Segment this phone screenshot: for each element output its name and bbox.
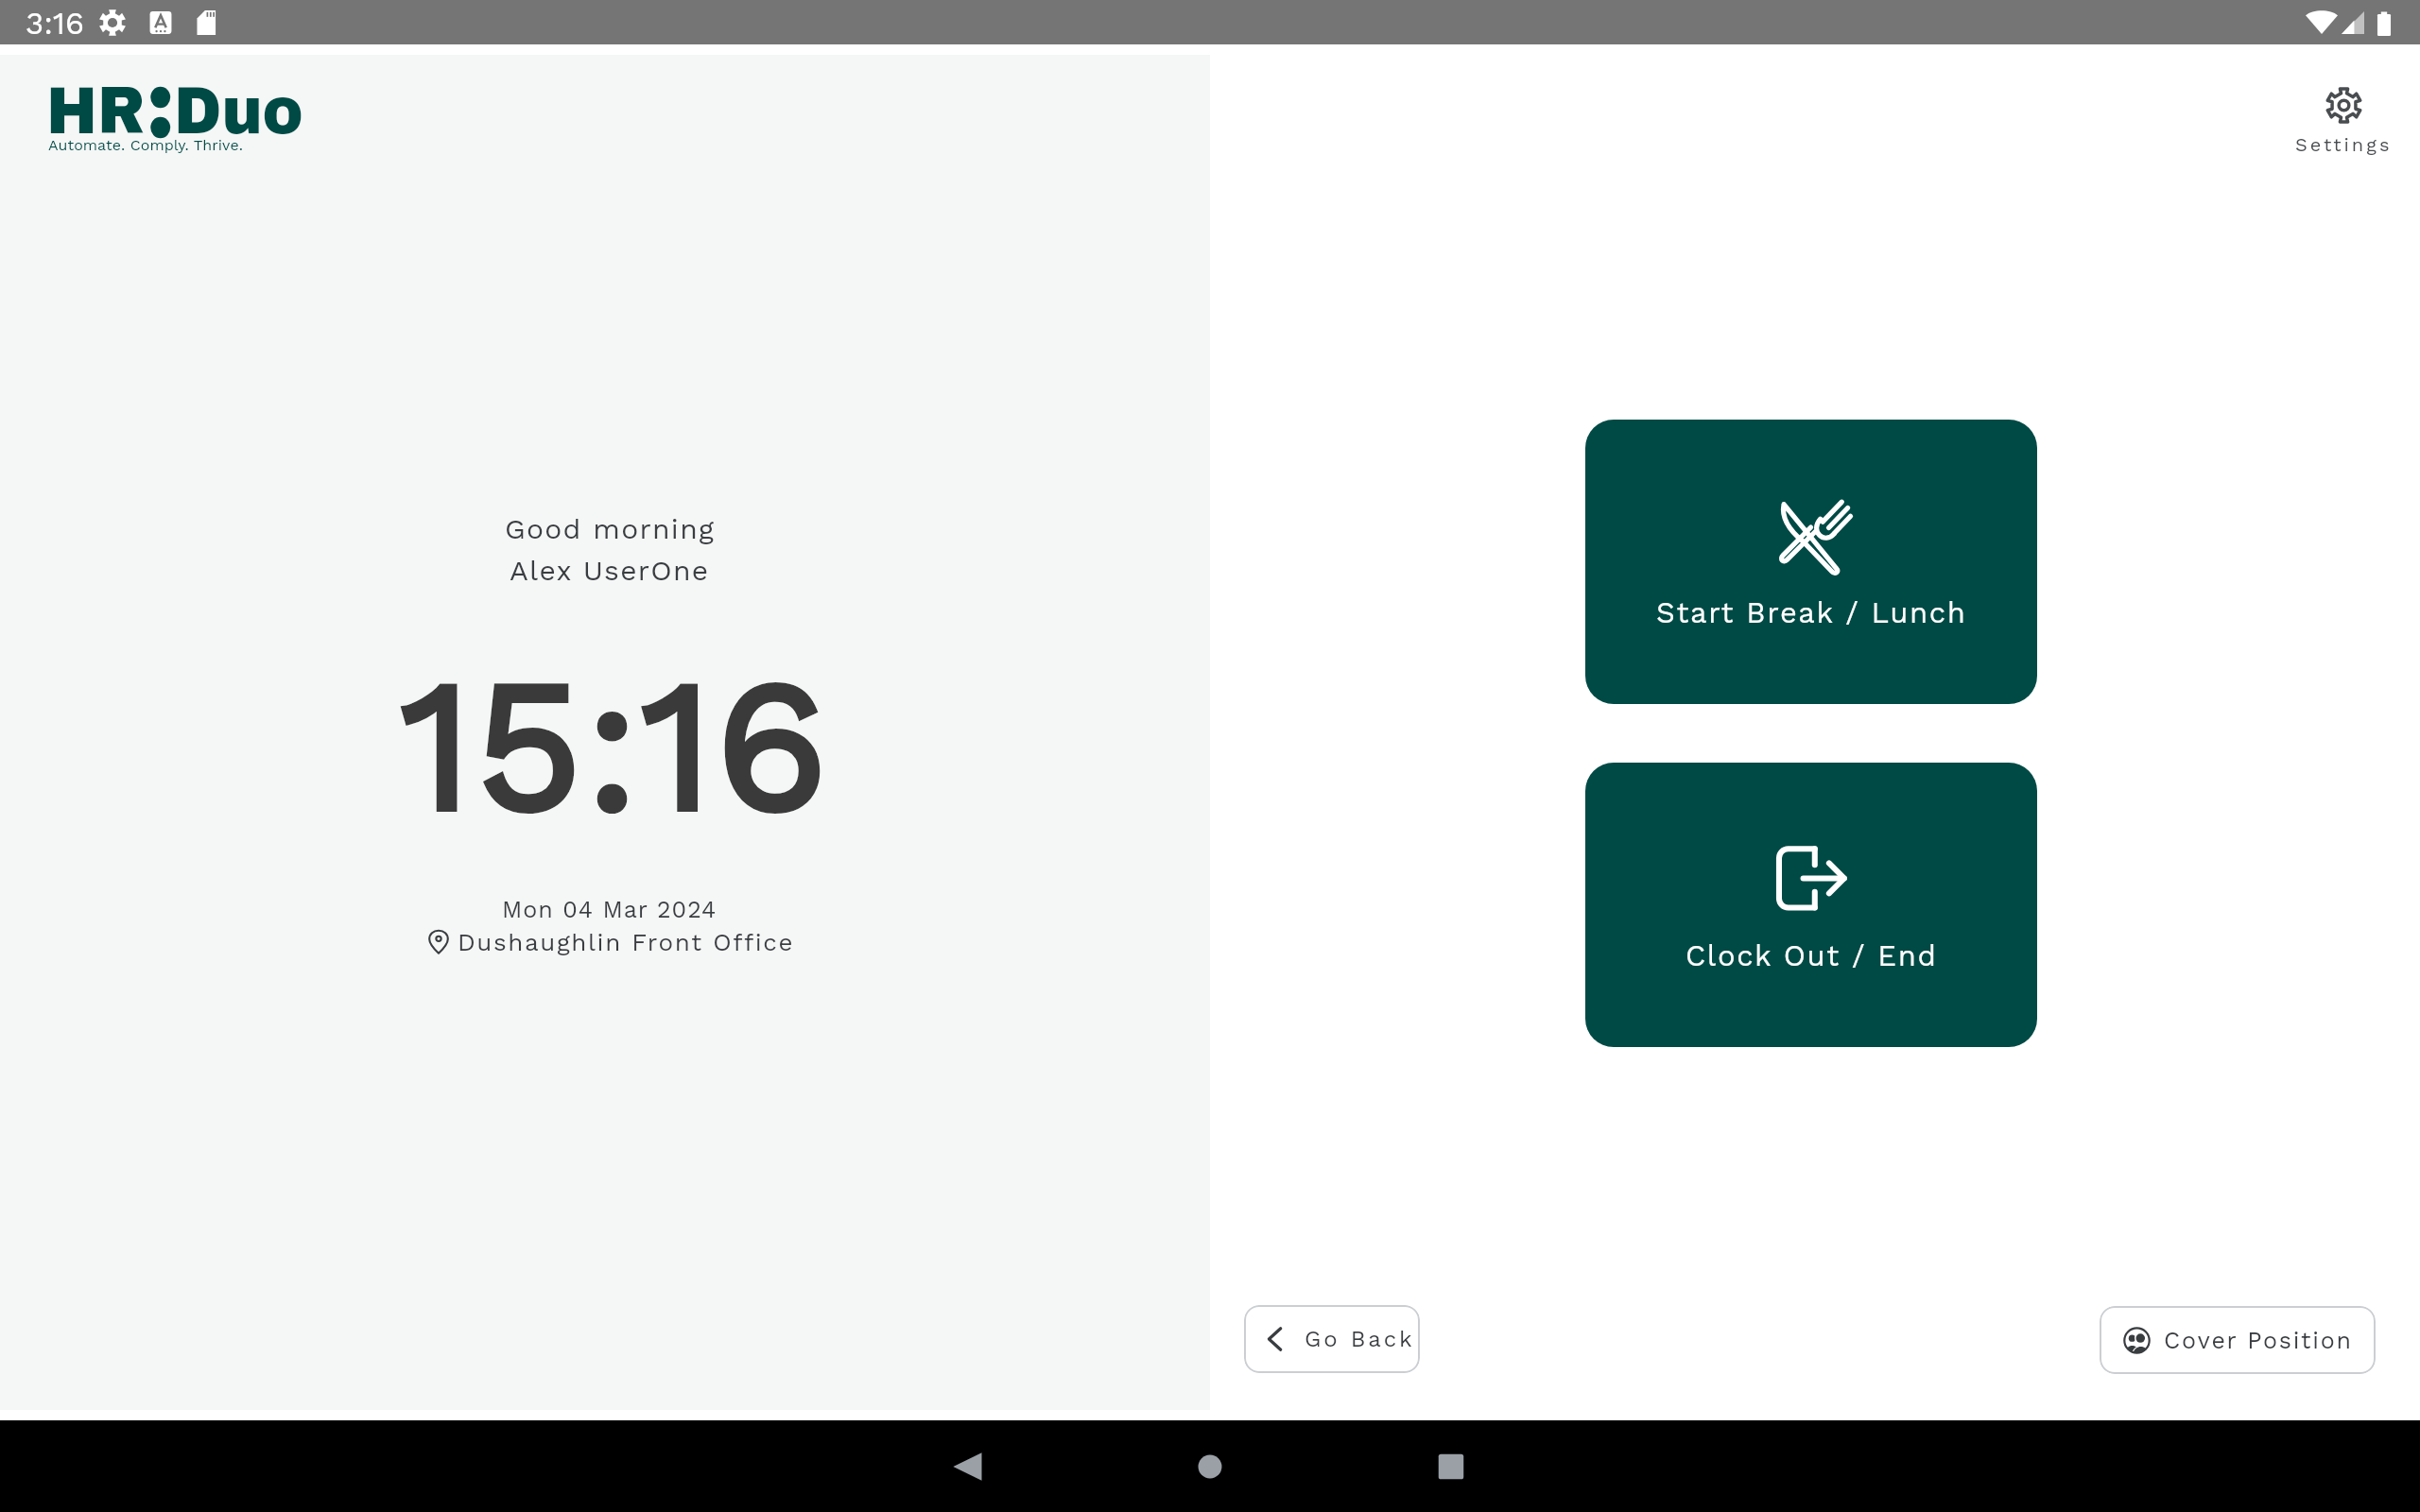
button[interactable]: Recent apps [1426, 1442, 1476, 1491]
button[interactable]: Go Back [1244, 1305, 1420, 1373]
staticText: Start Break / Lunch [1656, 595, 1967, 629]
staticText: Dushaughlin Front Office [458, 928, 795, 956]
button[interactable]: Clock Out / End [1585, 763, 2037, 1047]
staticText: Cover Position [2164, 1327, 2353, 1354]
staticText: Good morning [505, 512, 716, 545]
staticText: 3:16 [26, 5, 84, 42]
staticText: Mon 04 Mar 2024 [502, 896, 717, 923]
staticText: Clock Out / End [1685, 938, 1938, 972]
staticText: Settings [2295, 133, 2393, 155]
staticText: HR [46, 76, 145, 147]
button[interactable]: Home [1185, 1442, 1235, 1491]
staticText: Go Back [1305, 1326, 1415, 1352]
button[interactable]: Settings [2282, 77, 2406, 164]
button[interactable]: Back [944, 1442, 994, 1491]
staticText: Alex UserOne [510, 554, 710, 587]
button[interactable]: Start Break / Lunch [1585, 420, 2037, 704]
staticText: Automate. Comply. Thrive. [48, 136, 244, 154]
button[interactable]: Cover Position [2100, 1306, 2376, 1374]
staticText: Duo [174, 76, 303, 147]
staticText: 15:16 [401, 637, 831, 854]
